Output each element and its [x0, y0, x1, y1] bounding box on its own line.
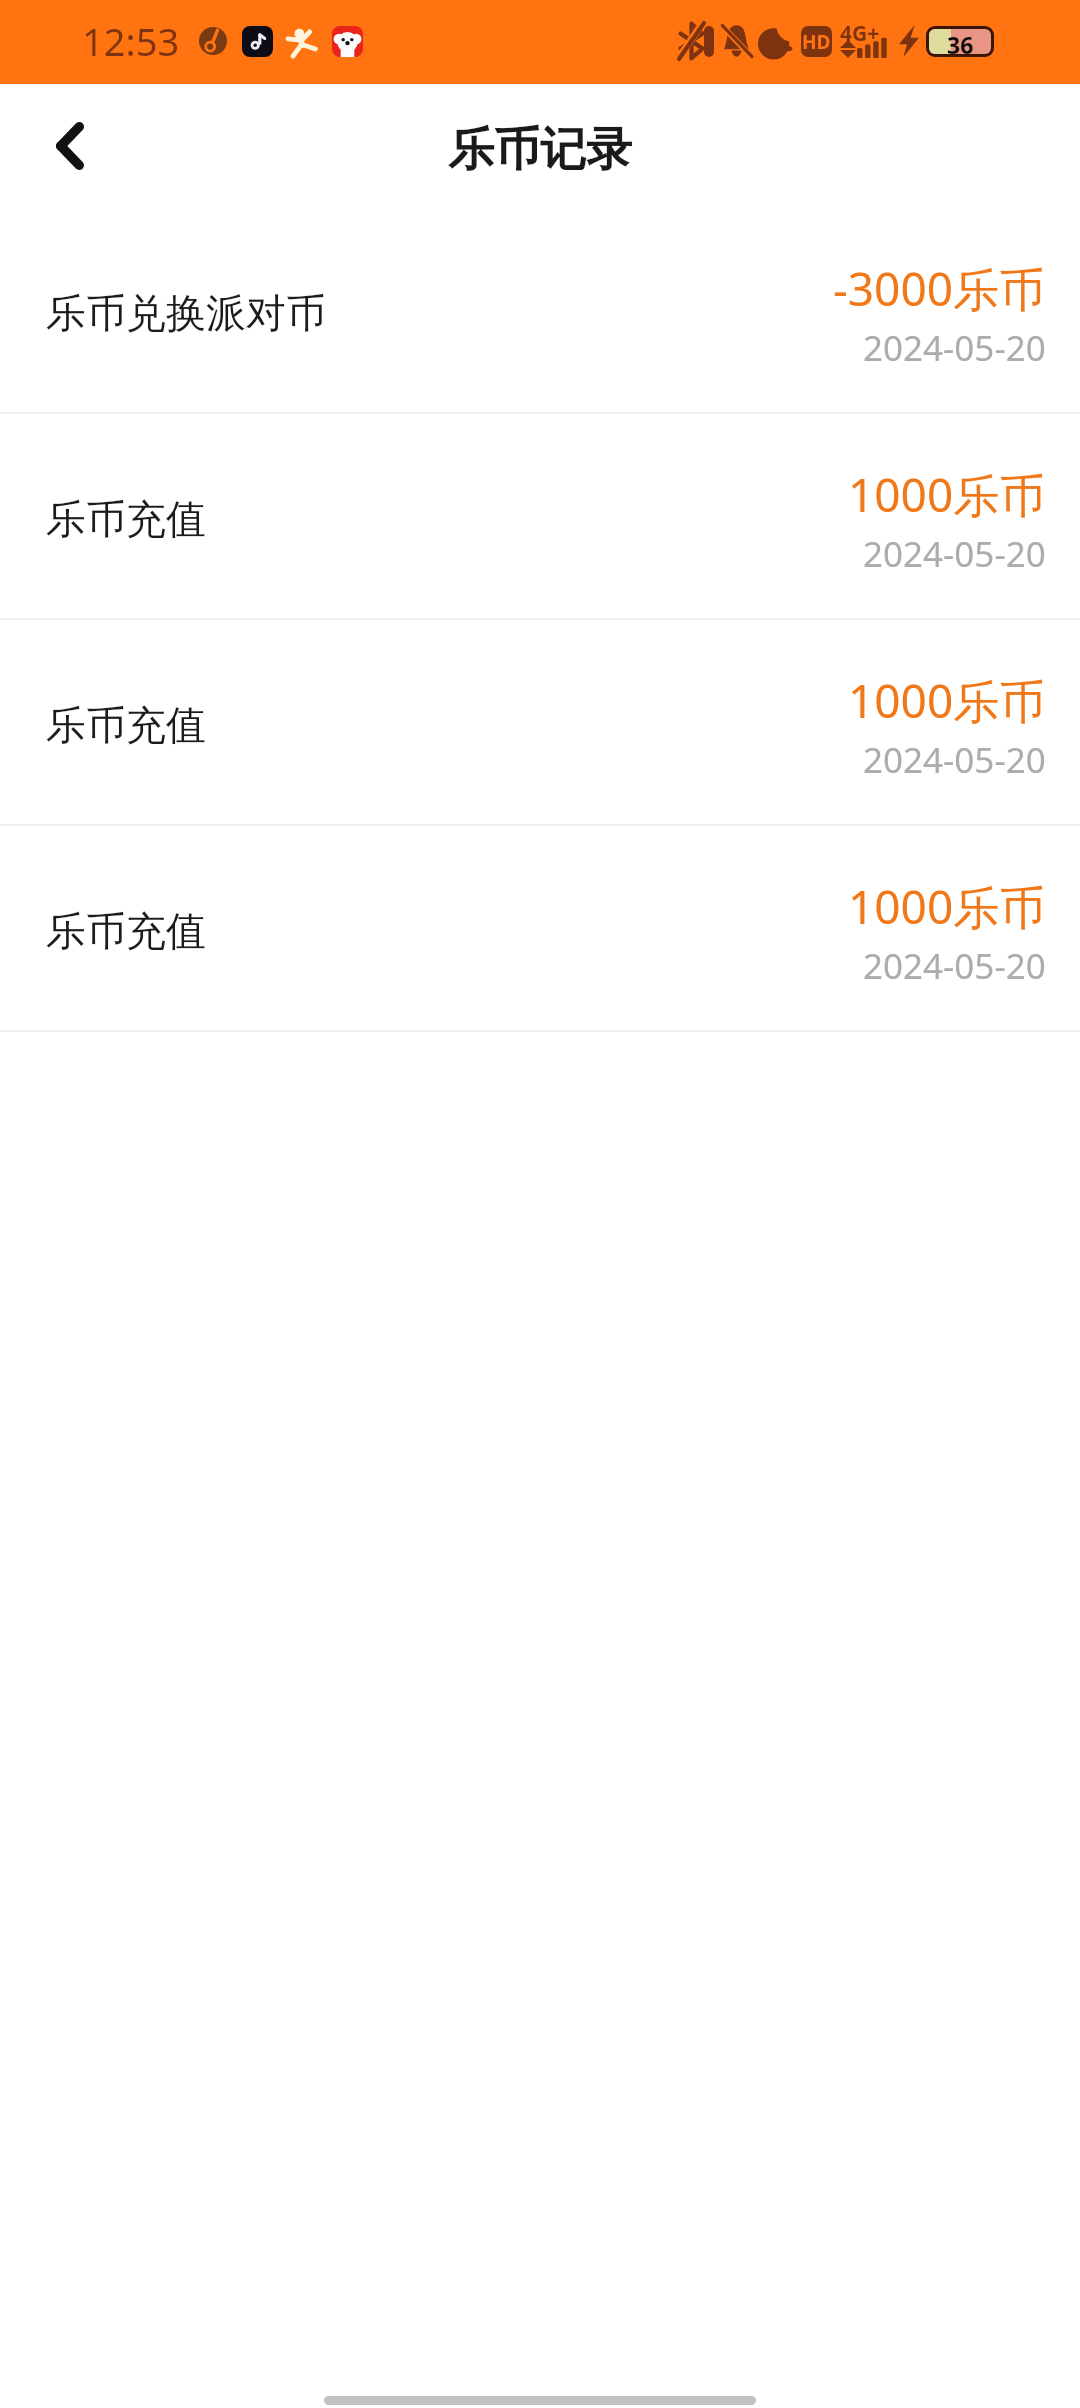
- button[interactable]: 乐币充值: [0, 826, 1080, 1030]
- button[interactable]: 乐币充值: [0, 620, 1080, 824]
- staticText: 2024-05-20: [863, 324, 1046, 372]
- button[interactable]: 乐币充值: [0, 414, 1080, 618]
- staticText: 乐币充值: [46, 700, 206, 750]
- button[interactable]: 乐币兑换派对币: [0, 208, 1080, 412]
- staticText: 36: [947, 29, 974, 54]
- staticText: 乐币充值: [46, 906, 206, 956]
- staticText: 乐币充值: [46, 494, 206, 544]
- staticText: 1000乐币: [848, 875, 1046, 938]
- staticText: 2024-05-20: [863, 942, 1046, 990]
- staticText: 4G+: [840, 19, 880, 48]
- staticText: 乐币兑换派对币: [46, 288, 326, 338]
- staticText: 乐币记录: [448, 121, 632, 179]
- button[interactable]: Back: [26, 102, 114, 190]
- staticText: 2024-05-20: [863, 530, 1046, 578]
- staticText: 12:53: [82, 15, 180, 67]
- staticText: -3000乐币: [833, 257, 1046, 320]
- staticText: 2024-05-20: [863, 736, 1046, 784]
- staticText: 1000乐币: [848, 669, 1046, 732]
- staticText: HD: [802, 29, 831, 55]
- staticText: 1000乐币: [848, 463, 1046, 526]
